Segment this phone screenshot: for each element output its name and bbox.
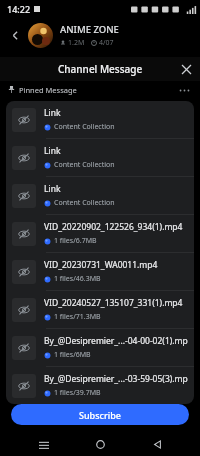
button[interactable]: Link bbox=[12, 177, 188, 214]
staticText: Link bbox=[44, 107, 61, 119]
button[interactable]: Pinned Message bbox=[8, 81, 192, 98]
button[interactable] bbox=[28, 23, 53, 48]
staticText: By_@Desipremier_...-04-00-02(1).mp4 bbox=[44, 335, 188, 347]
button[interactable]: Link bbox=[12, 139, 188, 176]
staticText: VID_20230731_WA0011.mp4 bbox=[44, 259, 158, 271]
staticText: By_@Desipremier_...-03-59-05(3).mp4 bbox=[44, 373, 188, 385]
button[interactable]: By_@Desipremier_...-03-59-05(3).mp4 bbox=[12, 367, 188, 404]
staticText: ANIME ZONE bbox=[60, 23, 119, 36]
staticText: 4/07 bbox=[99, 38, 114, 48]
button[interactable]: Back bbox=[4, 24, 26, 46]
button[interactable]: VID_20230731_WA0011.mp4 bbox=[12, 253, 188, 290]
button[interactable]: VID_20220902_122526_934(1).mp4 bbox=[12, 215, 188, 252]
staticText: 1.2M bbox=[68, 38, 85, 48]
staticText: VID_20240527_135107_331(1).mp4 bbox=[44, 297, 183, 309]
staticText: Pinned Message bbox=[19, 85, 77, 95]
staticText: 1 files/6MB bbox=[54, 350, 91, 360]
button[interactable]: Link bbox=[12, 101, 188, 138]
staticText: Channel Message bbox=[58, 62, 143, 76]
staticText: Link bbox=[44, 183, 61, 195]
staticText: 1 files/39.7MB bbox=[54, 388, 101, 398]
staticText: Link bbox=[44, 145, 61, 157]
staticText: Content Collection bbox=[54, 122, 115, 132]
staticText: 1 files/6.7MB bbox=[54, 236, 97, 246]
button[interactable]: VID_20240527_135107_331(1).mp4 bbox=[12, 291, 188, 328]
button[interactable]: Back bbox=[144, 433, 170, 456]
staticText: Content Collection bbox=[54, 198, 115, 208]
staticText: Subscribe bbox=[79, 409, 121, 421]
button[interactable]: Home bbox=[87, 433, 113, 456]
button[interactable]: Recent apps bbox=[31, 433, 57, 456]
button[interactable]: More options bbox=[176, 82, 192, 98]
button[interactable]: Subscribe bbox=[11, 404, 189, 425]
button[interactable]: By_@Desipremier_...-04-00-02(1).mp4 bbox=[12, 329, 188, 366]
staticText: Content Collection bbox=[54, 160, 115, 170]
staticText: 14:22 bbox=[7, 3, 31, 15]
staticText: 1 files/71.3MB bbox=[54, 312, 101, 322]
staticText: 1 files/46.3MB bbox=[54, 274, 101, 284]
staticText: VID_20220902_122526_934(1).mp4 bbox=[44, 221, 183, 233]
button[interactable]: Close bbox=[178, 61, 194, 77]
